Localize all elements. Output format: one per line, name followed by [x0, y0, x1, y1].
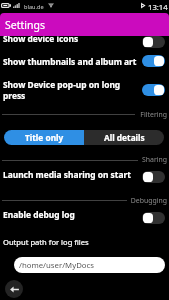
button[interactable]: Show device icons	[142, 36, 165, 48]
staticText: Sharing	[0, 155, 167, 164]
staticText: Launch media sharing on start	[3, 169, 140, 180]
staticText: Show Device pop-up on long press	[3, 79, 140, 101]
other: Battery	[1, 3, 11, 8]
button[interactable]: Enable debug log	[142, 212, 165, 224]
staticText: Title only	[25, 132, 64, 143]
button[interactable]: Title only	[4, 130, 84, 145]
button[interactable]	[0, 208, 169, 224]
button[interactable]: Launch media sharing on start	[142, 171, 165, 183]
staticText: Filtering	[0, 110, 167, 119]
staticText: Debugging	[0, 196, 167, 205]
button[interactable]: Back	[5, 280, 23, 298]
staticText: Enable debug log	[3, 209, 140, 220]
button[interactable]: Show Device pop-up on long press	[142, 84, 165, 96]
staticText: Show thumbnails and album art	[3, 56, 140, 67]
other: Signal	[13, 3, 20, 8]
button[interactable]: /home/user/MyDocs	[14, 257, 165, 273]
button[interactable]: Settings	[0, 13, 169, 36]
button[interactable]: All details	[84, 130, 164, 145]
staticText: blau.de	[24, 3, 44, 11]
staticText: Settings	[5, 18, 45, 32]
staticText: /home/user/MyDocs	[19, 260, 95, 271]
button[interactable]	[0, 168, 169, 184]
staticText: All details	[104, 132, 145, 143]
staticText: 13:14	[148, 2, 168, 12]
staticText: Show device icons	[3, 33, 140, 44]
button[interactable]	[0, 54, 169, 69]
button[interactable]	[0, 32, 169, 48]
button[interactable]	[0, 78, 169, 96]
button[interactable]: Show thumbnails and album art	[142, 55, 165, 67]
staticText: Output path for log files	[3, 237, 89, 247]
other: Media playing	[141, 3, 145, 8]
other: Wi-Fi	[48, 3, 54, 8]
